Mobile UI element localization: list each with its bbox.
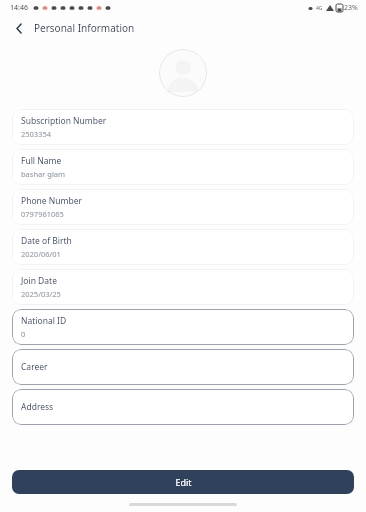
button[interactable]: Edit	[12, 470, 354, 494]
staticText: 2020/06/01	[21, 249, 61, 259]
button[interactable]: Address	[12, 389, 354, 425]
staticText: Edit	[175, 476, 192, 488]
button[interactable]: Profile photo	[159, 49, 207, 97]
button[interactable]: Phone Number	[12, 189, 354, 225]
staticText: 14:46	[10, 3, 28, 13]
staticText: National ID	[21, 315, 67, 327]
staticText: 0797961065	[21, 209, 64, 219]
button[interactable]: Back	[9, 18, 29, 38]
staticText: Phone Number	[21, 195, 82, 207]
staticText: Career	[21, 361, 48, 373]
button[interactable]: Career	[12, 349, 354, 385]
staticText: Personal Information	[34, 21, 135, 35]
button[interactable]: Date of Birth	[12, 229, 354, 265]
staticText: Full Name	[21, 155, 62, 167]
button[interactable]: Full Name	[12, 149, 354, 185]
staticText: 4G	[316, 5, 323, 12]
staticText: 0	[21, 329, 26, 339]
staticText: Subscription Number	[21, 115, 107, 127]
staticText: 2025/03/25	[21, 289, 61, 299]
staticText: Date of Birth	[21, 235, 72, 247]
button[interactable]: Subscription Number	[12, 109, 354, 145]
button[interactable]: Join Date	[12, 269, 354, 305]
staticText: 23%	[344, 3, 358, 13]
staticText: Address	[21, 401, 54, 413]
button[interactable]: National ID	[12, 309, 354, 345]
staticText: bashar glam	[21, 169, 66, 179]
staticText: 2503354	[21, 129, 52, 139]
staticText: Join Date	[21, 275, 57, 287]
